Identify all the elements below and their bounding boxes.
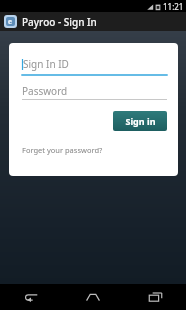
button[interactable]: Home (62, 284, 124, 310)
button[interactable]: Recent apps (124, 284, 186, 310)
staticText: e (8, 17, 13, 26)
staticText: Payroo - Sign In (22, 15, 97, 29)
button[interactable]: Sign in (113, 111, 167, 131)
button[interactable]: Back (0, 284, 62, 310)
staticText: 11:21 (163, 1, 184, 12)
staticText: Sign in (125, 115, 156, 127)
staticText: Sign In ID (23, 57, 69, 71)
button[interactable]: Forget your password? (22, 145, 103, 155)
staticText: Forget your password? (22, 145, 103, 155)
staticText: Password (22, 84, 68, 98)
